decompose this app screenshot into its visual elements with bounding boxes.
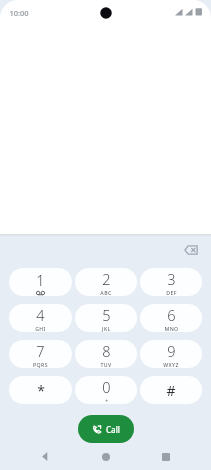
button[interactable]: 9 bbox=[140, 340, 202, 368]
button[interactable]: 6 bbox=[140, 304, 202, 332]
button[interactable]: 0 bbox=[75, 376, 137, 404]
staticText: ABC bbox=[100, 289, 112, 296]
staticText: 3 bbox=[167, 269, 176, 289]
button[interactable]: 8 bbox=[75, 340, 137, 368]
staticText: Call bbox=[106, 424, 120, 435]
staticText: * bbox=[37, 381, 45, 400]
button[interactable]: 1 bbox=[9, 268, 72, 296]
staticText: 10:00 bbox=[9, 8, 29, 18]
button[interactable]: 7 bbox=[9, 340, 72, 368]
staticText: + bbox=[105, 397, 109, 404]
button[interactable]: 4 bbox=[9, 304, 72, 332]
staticText: 1 bbox=[36, 270, 45, 290]
staticText: 8 bbox=[102, 341, 111, 361]
staticText: DEF bbox=[166, 289, 177, 296]
staticText: MNO bbox=[164, 325, 179, 332]
staticText: PQRS bbox=[33, 361, 48, 368]
button[interactable]: Home bbox=[91, 443, 121, 470]
staticText: 7 bbox=[36, 341, 45, 361]
staticText: GHI bbox=[35, 325, 46, 332]
staticText: TUV bbox=[100, 361, 112, 368]
staticText: JKL bbox=[102, 325, 111, 332]
staticText: 6 bbox=[167, 305, 176, 325]
button[interactable]: Recents bbox=[151, 443, 181, 470]
staticText: 0 bbox=[102, 377, 111, 397]
staticText: # bbox=[166, 381, 176, 400]
staticText: 9 bbox=[167, 341, 176, 361]
button[interactable]: Back bbox=[30, 443, 60, 470]
button[interactable]: * bbox=[9, 376, 72, 404]
staticText: 2 bbox=[102, 269, 111, 289]
staticText: 5 bbox=[102, 305, 111, 325]
button[interactable]: # bbox=[140, 376, 202, 404]
button[interactable]: Backspace bbox=[179, 238, 203, 262]
button[interactable]: 2 bbox=[75, 268, 137, 296]
button[interactable]: 5 bbox=[75, 304, 137, 332]
button[interactable]: Call bbox=[78, 415, 134, 443]
staticText: WXYZ bbox=[163, 361, 179, 368]
button[interactable]: 3 bbox=[140, 268, 202, 296]
staticText: 4 bbox=[36, 305, 45, 325]
